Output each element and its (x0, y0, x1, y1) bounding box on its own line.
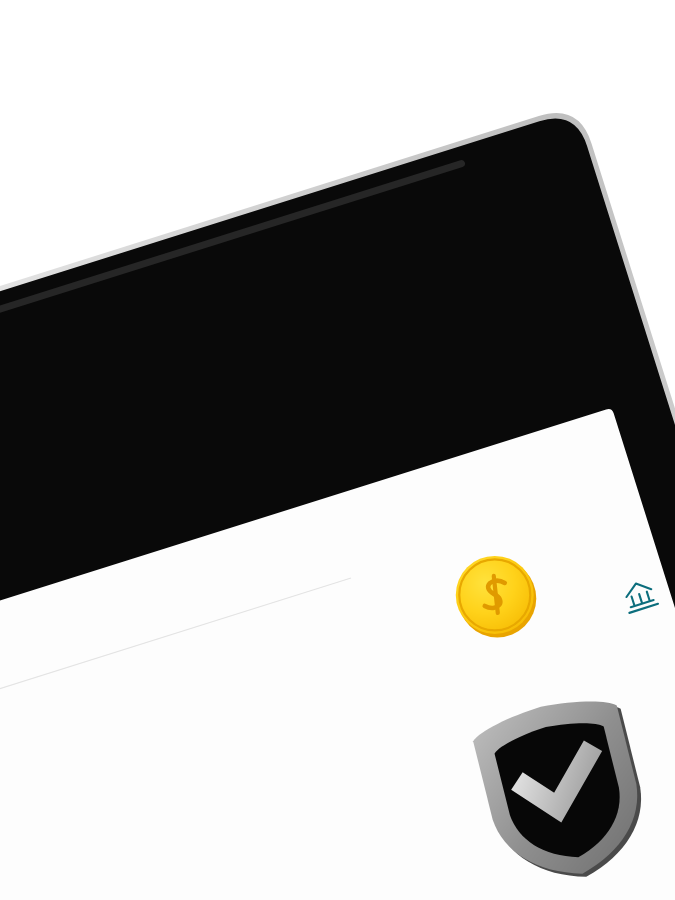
button[interactable]: Tablet showing banking app (0, 0, 675, 900)
